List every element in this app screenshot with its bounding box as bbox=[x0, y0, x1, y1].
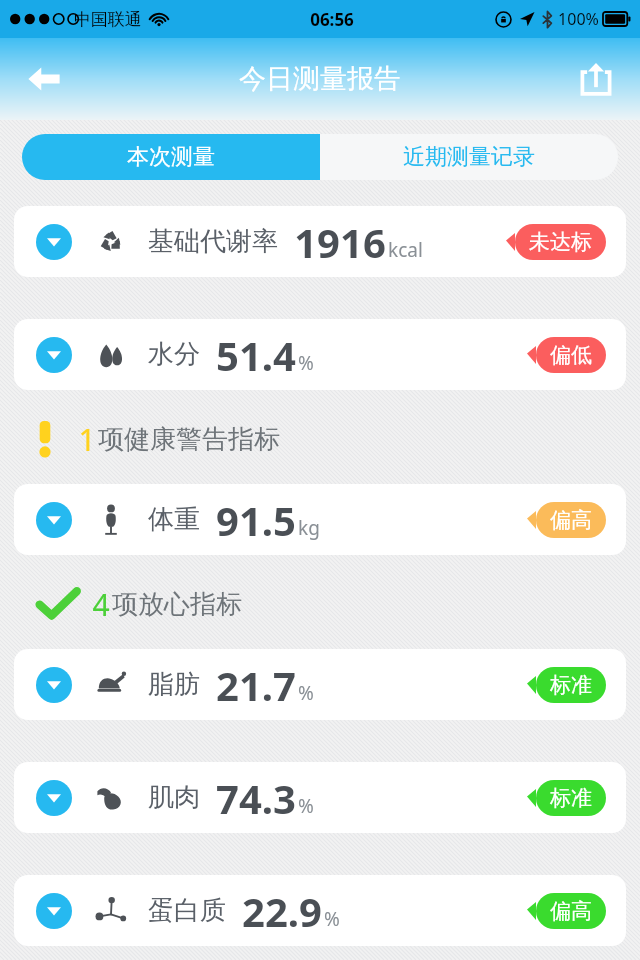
button[interactable]: 水分 bbox=[14, 319, 626, 390]
staticText: 体重 bbox=[148, 503, 200, 536]
button[interactable]: 蛋白质 bbox=[14, 875, 626, 946]
staticText: % bbox=[324, 906, 340, 932]
staticText: 21.7 bbox=[216, 658, 296, 712]
staticText: 22.9 bbox=[242, 884, 322, 938]
staticText: 4 bbox=[92, 584, 110, 625]
staticText: 未达标 bbox=[529, 229, 592, 255]
staticText: kcal bbox=[388, 237, 423, 263]
staticText: 1 bbox=[78, 419, 96, 460]
staticText: 基础代谢率 bbox=[148, 225, 278, 258]
staticText: 1916 bbox=[294, 215, 386, 269]
staticText: 偏高 bbox=[550, 898, 592, 924]
button[interactable]: 肌肉 bbox=[14, 762, 626, 833]
staticText: 标准 bbox=[550, 672, 592, 698]
staticText: 今日测量报告 bbox=[239, 62, 401, 96]
staticText: % bbox=[298, 793, 314, 819]
staticText: % bbox=[298, 680, 314, 706]
staticText: kg bbox=[298, 515, 320, 541]
staticText: 本次测量 bbox=[127, 143, 215, 171]
staticText: 项放心指标 bbox=[112, 588, 242, 621]
button[interactable]: 脂肪 bbox=[14, 649, 626, 720]
staticText: 标准 bbox=[550, 785, 592, 811]
staticText: 100% bbox=[558, 8, 599, 30]
button[interactable]: 近期测量记录 bbox=[320, 134, 618, 180]
staticText: 91.5 bbox=[216, 493, 296, 547]
button[interactable]: Share bbox=[568, 51, 624, 107]
staticText: 脂肪 bbox=[148, 668, 200, 701]
staticText: 近期测量记录 bbox=[403, 143, 535, 171]
staticText: 水分 bbox=[148, 338, 200, 371]
staticText: 74.3 bbox=[216, 771, 296, 825]
staticText: 偏高 bbox=[550, 507, 592, 533]
button[interactable]: 基础代谢率 bbox=[14, 206, 626, 277]
staticText: 项健康警告指标 bbox=[98, 423, 280, 456]
staticText: 肌肉 bbox=[148, 781, 200, 814]
staticText: 蛋白质 bbox=[148, 894, 226, 927]
button[interactable]: 体重 bbox=[14, 484, 626, 555]
button[interactable]: 本次测量 bbox=[22, 134, 320, 180]
staticText: 51.4 bbox=[216, 328, 296, 382]
staticText: 偏低 bbox=[550, 342, 592, 368]
staticText: 06:56 bbox=[310, 8, 354, 31]
staticText: 中国联通 bbox=[74, 9, 142, 30]
staticText: % bbox=[298, 350, 314, 376]
button[interactable]: Back bbox=[16, 51, 72, 107]
